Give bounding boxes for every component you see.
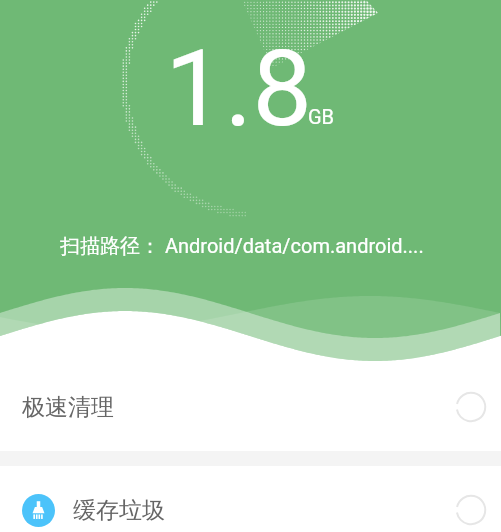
staticText: 极速清理 — [22, 393, 114, 422]
button[interactable]: 极速清理 — [0, 366, 501, 448]
button[interactable]: 缓存垃圾 — [0, 466, 501, 532]
staticText: 1.8 — [165, 27, 313, 151]
staticText: 缓存垃圾 — [73, 496, 165, 525]
staticText: GB — [308, 105, 335, 128]
staticText: 扫描路径： Android/data/com.android.... — [60, 234, 424, 259]
